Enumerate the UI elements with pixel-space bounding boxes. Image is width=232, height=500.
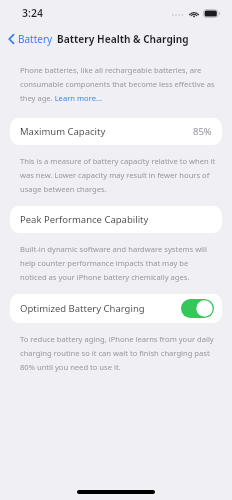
staticText: To reduce battery aging, iPhone learns f… <box>20 331 216 373</box>
staticText: Battery <box>18 32 53 46</box>
button[interactable]: Phone batteries, like all rechargeable b… <box>20 62 216 104</box>
button[interactable]: Maximum Capacity <box>10 118 222 145</box>
staticText: Maximum Capacity <box>20 125 106 138</box>
button[interactable]: Peak Performance Capability <box>10 206 222 233</box>
button[interactable]: Optimized Battery Charging, on <box>181 299 214 318</box>
button[interactable]: Optimized Battery Charging <box>10 294 222 323</box>
staticText: Battery Health & Charging <box>57 32 189 46</box>
staticText: 3:24 <box>22 6 43 20</box>
staticText: This is a measure of battery capacity re… <box>20 153 216 195</box>
staticText: Peak Performance Capability <box>20 213 149 226</box>
staticText: Optimized Battery Charging <box>20 302 145 315</box>
button[interactable]: Battery <box>5 29 56 49</box>
staticText: 85% <box>193 125 212 138</box>
staticText: Built-in dynamic software and hardware s… <box>20 241 216 283</box>
